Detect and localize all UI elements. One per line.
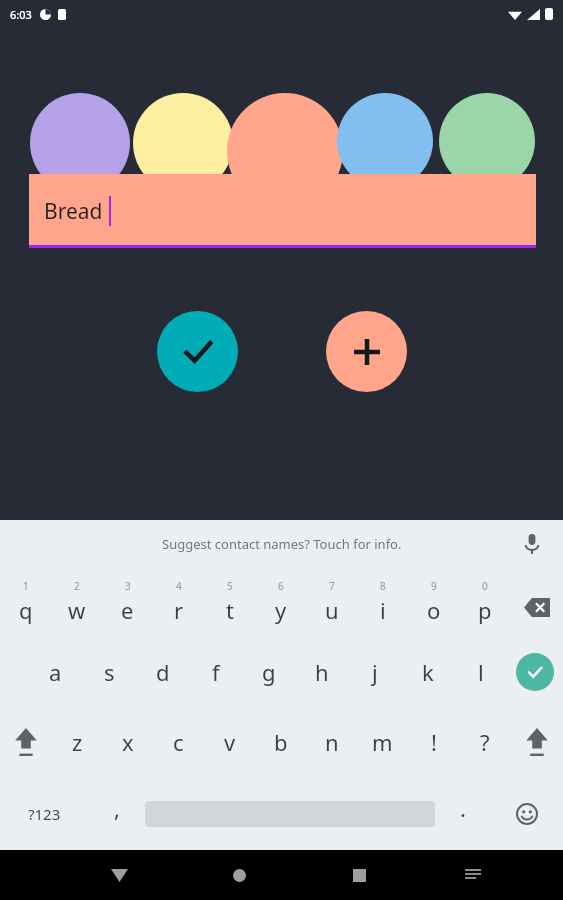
staticText: 9 [431, 579, 437, 593]
staticText: p [478, 595, 492, 625]
button[interactable]: Switch keyboard [435, 850, 510, 900]
button[interactable]: v [204, 707, 255, 777]
button[interactable]: Voice input [519, 531, 545, 557]
button[interactable]: Add [326, 311, 407, 392]
button[interactable]: Enter [507, 637, 563, 707]
button[interactable]: j [348, 637, 401, 707]
button[interactable]: Emoji [491, 777, 563, 850]
button[interactable]: Space [145, 777, 435, 850]
staticText: v [224, 727, 236, 757]
button[interactable]: Shift [0, 707, 52, 777]
button[interactable]: 8 [357, 567, 408, 637]
button[interactable]: 2 [51, 567, 102, 637]
staticText: . [460, 793, 466, 823]
button[interactable]: d [136, 637, 189, 707]
staticText: x [122, 727, 134, 757]
button[interactable]: c [153, 707, 204, 777]
staticText: 0 [482, 579, 488, 593]
staticText: z [72, 727, 83, 757]
button[interactable]: ! [408, 707, 459, 777]
staticText: a [49, 657, 62, 687]
button[interactable]: ?123 [0, 777, 89, 850]
button[interactable]: 3 [102, 567, 153, 637]
button[interactable]: Recents [322, 850, 397, 900]
staticText: ! [431, 727, 437, 757]
staticText: t [226, 595, 234, 625]
button[interactable]: 6 [255, 567, 306, 637]
staticText: j [372, 657, 378, 687]
staticText: e [121, 595, 134, 625]
staticText: u [325, 595, 339, 625]
button[interactable]: Confirm [157, 311, 238, 392]
staticText: h [315, 657, 329, 687]
button[interactable]: x [102, 707, 153, 777]
staticText: 6:03 [10, 7, 32, 22]
button[interactable]: 4 [153, 567, 204, 637]
staticText: d [156, 657, 170, 687]
staticText: 1 [23, 579, 29, 593]
staticText: r [174, 595, 184, 625]
staticText: f [212, 657, 220, 687]
button[interactable]: , [89, 777, 145, 850]
button[interactable]: n [306, 707, 357, 777]
staticText: 7 [329, 579, 335, 593]
button[interactable]: k [401, 637, 454, 707]
button[interactable]: Shift right [510, 707, 563, 777]
staticText: Suggest contact names? Touch for info. [162, 535, 402, 553]
staticText: l [478, 657, 484, 687]
staticText: 4 [176, 579, 182, 593]
button[interactable] [0, 520, 563, 567]
staticText: 3 [125, 579, 131, 593]
button[interactable]: a [28, 637, 82, 707]
button[interactable]: 0 [459, 567, 510, 637]
staticText: ?123 [28, 804, 61, 824]
staticText: 8 [380, 579, 386, 593]
staticText: s [104, 657, 115, 687]
staticText: ? [480, 727, 490, 757]
staticText: n [325, 727, 339, 757]
button[interactable]: Backspace [510, 567, 563, 637]
button[interactable]: 5 [204, 567, 255, 637]
staticText: 2 [74, 579, 80, 593]
button[interactable]: g [242, 637, 295, 707]
staticText: g [262, 657, 276, 687]
button[interactable]: 1 [0, 567, 51, 637]
staticText: c [173, 727, 184, 757]
staticText: m [372, 727, 393, 757]
staticText: 5 [227, 579, 233, 593]
button[interactable]: z [52, 707, 102, 777]
staticText: k [422, 657, 434, 687]
button[interactable]: . [435, 777, 491, 850]
button[interactable]: h [295, 637, 348, 707]
staticText: q [19, 595, 33, 625]
button[interactable]: 7 [306, 567, 357, 637]
staticText: , [114, 793, 120, 823]
staticText: w [68, 595, 86, 625]
button[interactable]: m [357, 707, 408, 777]
staticText: 6 [278, 579, 284, 593]
button[interactable]: b [255, 707, 306, 777]
staticText: Bread [44, 197, 103, 226]
button[interactable]: ? [459, 707, 510, 777]
button[interactable]: 9 [408, 567, 459, 637]
staticText: i [380, 595, 386, 625]
button[interactable]: Back [82, 850, 157, 900]
button[interactable]: Home [202, 850, 277, 900]
button[interactable]: s [82, 637, 136, 707]
button[interactable]: f [189, 637, 242, 707]
staticText: y [275, 595, 287, 625]
button[interactable]: l [454, 637, 507, 707]
staticText: b [274, 727, 288, 757]
button[interactable]: Bread [0, 28, 563, 520]
staticText: o [427, 595, 441, 625]
